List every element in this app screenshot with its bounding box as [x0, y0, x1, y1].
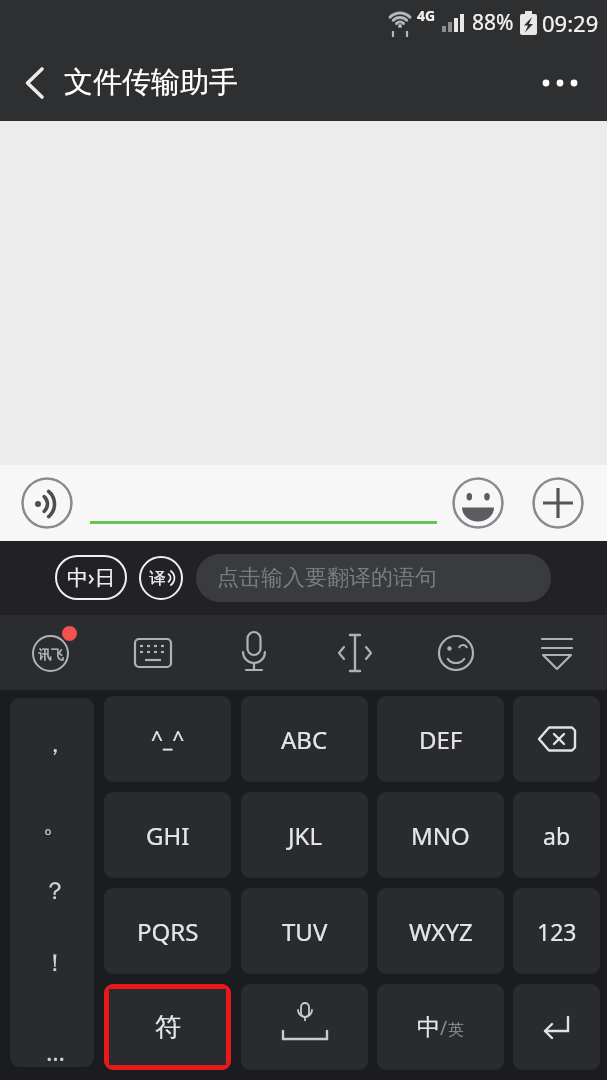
- button[interactable]: ABC: [241, 696, 368, 782]
- staticText: ，: [43, 729, 67, 759]
- button[interactable]: ^_^: [104, 696, 231, 782]
- staticText: WXYZ: [409, 915, 473, 948]
- staticText: ABC: [281, 723, 328, 756]
- staticText: 译: [149, 568, 166, 589]
- staticText: 。: [43, 809, 67, 839]
- staticText: 点击输入要翻译的语句: [217, 564, 437, 592]
- button[interactable]: [102, 615, 203, 690]
- button[interactable]: 中: [377, 984, 504, 1070]
- button[interactable]: DEF: [377, 696, 504, 782]
- staticText: PQRS: [137, 915, 199, 948]
- staticText: 中›日: [67, 563, 116, 592]
- button[interactable]: [506, 615, 607, 690]
- staticText: JKL: [288, 819, 322, 852]
- button[interactable]: [304, 615, 405, 690]
- button[interactable]: JKL: [241, 792, 368, 878]
- button[interactable]: [90, 519, 437, 541]
- staticText: 英: [448, 1020, 464, 1040]
- staticText: GHI: [146, 819, 190, 852]
- button[interactable]: [532, 477, 584, 529]
- button[interactable]: [203, 615, 304, 690]
- staticText: ab: [543, 820, 571, 851]
- staticText: ？: [43, 876, 67, 906]
- button[interactable]: ab: [513, 792, 600, 878]
- staticText: DEF: [419, 723, 463, 756]
- staticText: 符: [155, 1011, 181, 1044]
- staticText: MNO: [411, 819, 470, 852]
- button[interactable]: [530, 51, 590, 115]
- staticText: /: [440, 1015, 448, 1041]
- button[interactable]: MNO: [377, 792, 504, 878]
- button[interactable]: 中›日: [55, 555, 127, 600]
- button[interactable]: [513, 696, 600, 782]
- button[interactable]: ，: [10, 698, 94, 1067]
- button[interactable]: [241, 984, 368, 1070]
- staticText: 09:29: [542, 8, 599, 38]
- button[interactable]: [452, 477, 504, 529]
- button[interactable]: GHI: [104, 792, 231, 878]
- staticText: 88%: [472, 8, 514, 37]
- staticText: …: [46, 1035, 65, 1067]
- button[interactable]: PQRS: [104, 888, 231, 974]
- button[interactable]: 讯飞: [0, 615, 102, 690]
- button[interactable]: TUV: [241, 888, 368, 974]
- button[interactable]: WXYZ: [377, 888, 504, 974]
- button[interactable]: 符: [104, 984, 231, 1070]
- staticText: ^_^: [151, 725, 185, 754]
- staticText: TUV: [282, 915, 328, 948]
- staticText: 中: [417, 1013, 440, 1042]
- button[interactable]: 点击输入要翻译的语句: [196, 554, 551, 602]
- staticText: 4G: [417, 6, 436, 25]
- staticText: 123: [537, 916, 577, 947]
- button[interactable]: [21, 477, 73, 529]
- button[interactable]: [405, 615, 506, 690]
- staticText: ！: [43, 948, 67, 978]
- staticText: 文件传输助手: [64, 64, 238, 101]
- button[interactable]: 123: [513, 888, 600, 974]
- button[interactable]: 译: [139, 556, 183, 600]
- button[interactable]: [513, 984, 600, 1070]
- button[interactable]: [14, 53, 54, 113]
- staticText: 讯飞: [38, 646, 64, 662]
